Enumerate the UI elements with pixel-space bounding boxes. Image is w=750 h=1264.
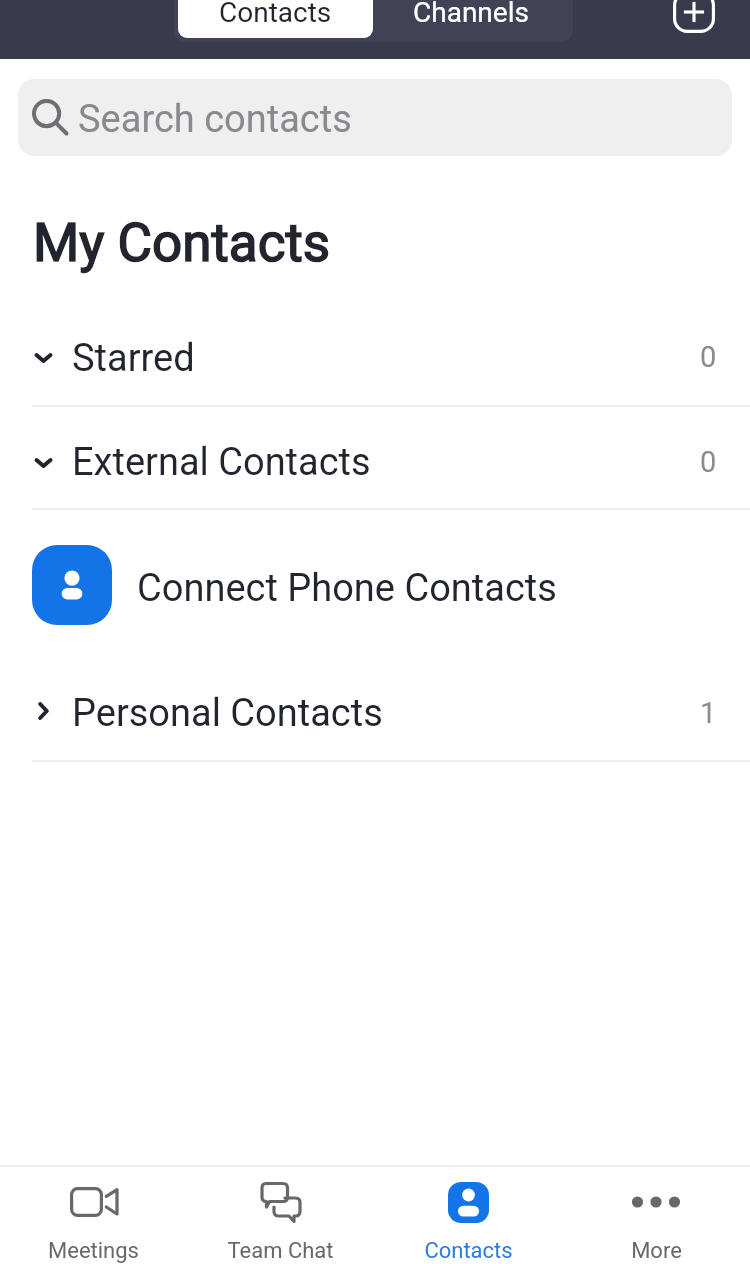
button[interactable]: Contacts [178, 0, 373, 38]
staticText: My Contacts [33, 212, 331, 274]
button[interactable]: Connect Phone Contacts [0, 509, 750, 661]
button[interactable]: Search contacts [18, 79, 732, 156]
button[interactable]: Channels [373, 0, 569, 38]
button[interactable]: Personal Contacts [0, 661, 750, 760]
button[interactable]: Add [663, 0, 725, 41]
staticText: Connect Phone Contacts [137, 566, 557, 611]
staticText: 0 [700, 445, 717, 479]
button[interactable]: Meetings [0, 1167, 187, 1264]
button[interactable]: Contacts [374, 1167, 562, 1264]
staticText: 0 [700, 340, 717, 374]
staticText: Contacts [219, 0, 332, 29]
button[interactable]: More [562, 1167, 750, 1264]
staticText: Search contacts [78, 97, 352, 142]
staticText: External Contacts [72, 440, 371, 485]
staticText: Meetings [48, 1238, 139, 1264]
staticText: More [631, 1238, 682, 1264]
staticText: Contacts [424, 1238, 513, 1264]
staticText: Starred [72, 336, 195, 381]
staticText: Team Chat [227, 1238, 334, 1264]
staticText: Personal Contacts [72, 691, 383, 736]
staticText: Channels [413, 0, 529, 29]
staticText: 1 [700, 696, 717, 730]
button[interactable]: External Contacts [0, 408, 750, 511]
button[interactable]: Team Chat [187, 1167, 374, 1264]
button[interactable]: Starred [0, 304, 750, 406]
